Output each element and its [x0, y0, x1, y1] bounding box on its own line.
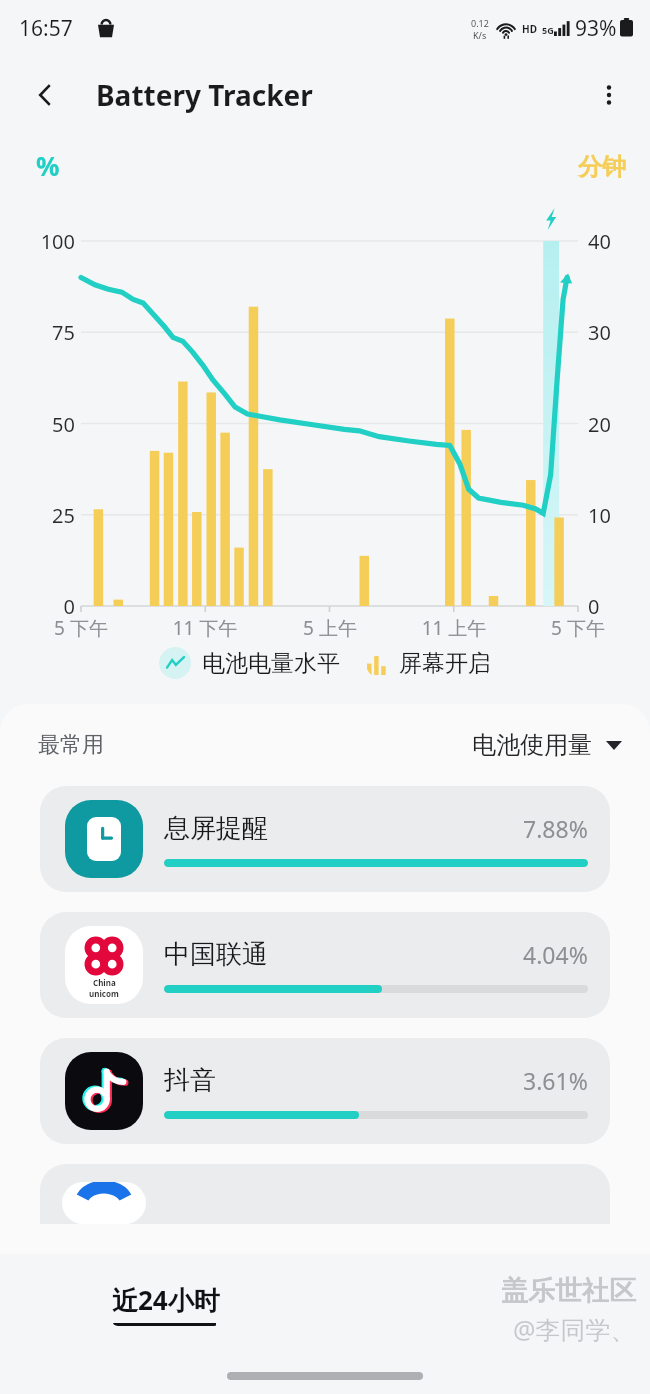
button[interactable]: China — [40, 912, 610, 1018]
staticText: 16:57 — [19, 14, 73, 43]
staticText: 25 — [25, 502, 75, 529]
staticText: 0 — [588, 593, 600, 620]
staticText: 最常用 — [38, 731, 104, 759]
staticText: 50 — [25, 411, 75, 438]
staticText: 3.61% — [523, 1065, 588, 1096]
button[interactable]: 息屏提醒 — [40, 786, 610, 892]
staticText: 盖乐世社区 — [501, 1274, 636, 1308]
button[interactable]: Back — [22, 72, 68, 118]
staticText: 5 下午 — [36, 615, 126, 641]
staticText: @李同学、 — [513, 1312, 636, 1346]
staticText: 10 — [588, 502, 611, 529]
staticText: 4.04% — [523, 939, 588, 970]
staticText: 中国联通 — [164, 938, 523, 971]
staticText: 0 — [25, 593, 75, 620]
button[interactable]: More options — [586, 72, 632, 118]
staticText: 5 上午 — [285, 615, 375, 641]
staticText: Battery Tracker — [96, 76, 313, 114]
staticText: HD — [522, 22, 537, 36]
staticText: 93% — [575, 14, 617, 43]
button[interactable]: 近24小时 — [112, 1282, 220, 1326]
staticText: 5 下午 — [533, 615, 623, 641]
staticText: 30 — [588, 319, 611, 346]
staticText: % — [36, 148, 60, 183]
staticText: unicom — [89, 988, 119, 999]
staticText: 11 上午 — [409, 615, 499, 641]
button[interactable]: 屏幕开启 — [366, 649, 491, 678]
button[interactable] — [40, 1164, 610, 1224]
staticText: 75 — [25, 319, 75, 346]
staticText: 40 — [588, 228, 611, 255]
staticText: 0.12 — [471, 17, 489, 29]
staticText: 屏幕开启 — [399, 649, 491, 678]
staticText: 5G — [542, 24, 554, 36]
staticText: 100 — [25, 228, 75, 255]
staticText: 电池使用量 — [472, 730, 592, 760]
staticText: 抖音 — [164, 1064, 523, 1097]
staticText: 11 下午 — [160, 615, 250, 641]
staticText: 近24小时 — [112, 1282, 220, 1318]
staticText: 分钟 — [578, 152, 626, 182]
button[interactable]: 抖音 — [40, 1038, 610, 1144]
staticText: China — [93, 977, 116, 988]
staticText: 电池电量水平 — [202, 649, 340, 678]
button[interactable]: 电池使用量 — [472, 730, 622, 760]
staticText: 20 — [588, 411, 611, 438]
staticText: K/s — [473, 29, 487, 41]
button[interactable]: 电池电量水平 — [159, 647, 340, 679]
staticText: 7.88% — [523, 813, 588, 844]
staticText: 息屏提醒 — [164, 812, 523, 845]
